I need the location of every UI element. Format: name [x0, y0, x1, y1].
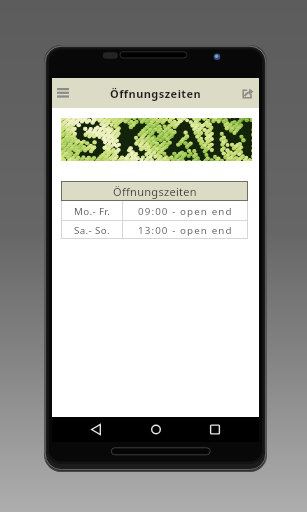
staticText: Öffnungszeiten: [113, 184, 197, 199]
staticText: Mo.- Fr.: [74, 205, 111, 218]
button[interactable]: Menu: [52, 78, 74, 108]
staticText: Öffnungszeiten: [110, 86, 202, 101]
staticText: Sa.- So.: [74, 224, 110, 237]
button[interactable]: Recent apps: [201, 417, 229, 442]
button[interactable]: Home: [142, 417, 170, 442]
button[interactable]: Back: [82, 417, 110, 442]
staticText: 09:00 - open end: [138, 205, 233, 218]
staticText: 13:00 - open end: [138, 224, 233, 237]
button[interactable]: Share: [237, 78, 259, 108]
